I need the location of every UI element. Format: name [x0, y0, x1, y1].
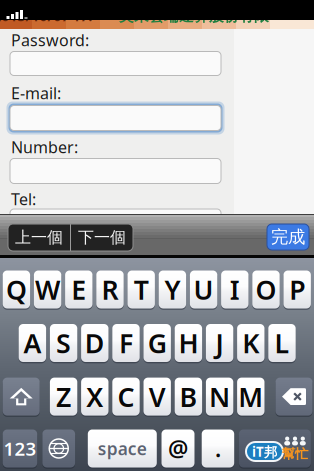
staticText: @	[168, 433, 188, 463]
button[interactable]: 上一個	[8, 224, 70, 251]
button[interactable]: R	[96, 270, 124, 308]
staticText: H	[178, 325, 198, 361]
staticText: Z	[56, 379, 71, 414]
button[interactable]: space	[88, 429, 157, 467]
button[interactable]: U	[190, 270, 217, 308]
staticText: B	[179, 379, 197, 414]
button[interactable]: N	[206, 378, 233, 416]
staticText: 完成	[271, 226, 305, 248]
button[interactable]: @	[161, 429, 194, 467]
staticText: V	[149, 379, 166, 414]
button[interactable]: C	[112, 378, 140, 416]
button[interactable]: Numbers	[3, 429, 37, 467]
staticText: Tel:	[11, 188, 36, 210]
button[interactable]: Next keyboard	[42, 429, 75, 467]
staticText: U	[194, 272, 214, 307]
staticText: G	[148, 325, 167, 361]
button[interactable]: A	[19, 324, 46, 362]
staticText: O	[255, 272, 276, 307]
button[interactable]: I	[221, 270, 248, 308]
staticText: J	[216, 325, 224, 361]
button[interactable]: G	[143, 324, 171, 362]
button[interactable]: Delete	[275, 378, 312, 416]
staticText: N	[209, 379, 230, 414]
button[interactable]: 完成	[267, 224, 309, 250]
button[interactable]: Y	[159, 270, 186, 308]
staticText: Password:	[11, 29, 89, 51]
button[interactable]: V	[143, 378, 171, 416]
button[interactable]: J	[206, 324, 233, 362]
staticText: T	[134, 272, 149, 307]
button[interactable]: D	[81, 324, 108, 362]
staticText: Number:	[11, 136, 78, 158]
staticText: 下一個	[78, 228, 126, 247]
staticText: D	[85, 325, 105, 361]
button[interactable]: K	[237, 324, 264, 362]
staticText: X	[86, 379, 103, 414]
staticText: I	[230, 272, 240, 307]
staticText: F	[119, 325, 133, 361]
staticText: S	[56, 325, 71, 361]
button[interactable]: S	[50, 324, 77, 362]
button[interactable]: M	[237, 378, 264, 416]
button[interactable]: P	[283, 270, 311, 308]
staticText: 2013/10/07 17:	[0, 7, 92, 25]
staticText: space	[98, 437, 147, 460]
staticText: K	[242, 325, 259, 361]
staticText: A	[23, 325, 41, 361]
button[interactable]: Shift	[3, 378, 40, 416]
button[interactable]: Z	[50, 378, 77, 416]
staticText: iT邦	[252, 443, 277, 460]
staticText: P	[289, 272, 305, 307]
button[interactable]: Q	[3, 270, 30, 308]
button[interactable]: Search	[239, 429, 311, 467]
staticText: E-mail:	[11, 82, 61, 104]
button[interactable]: E	[65, 270, 92, 308]
staticText: 幫忙	[282, 446, 308, 462]
button[interactable]: O	[252, 270, 280, 308]
button[interactable]: F	[112, 324, 140, 362]
button[interactable]: X	[81, 378, 108, 416]
button[interactable]: L	[268, 324, 296, 362]
button[interactable]: B	[175, 378, 202, 416]
button[interactable]: T	[127, 270, 155, 308]
staticText: E	[71, 272, 86, 307]
staticText: C	[117, 379, 134, 414]
staticText: 上一個	[15, 228, 63, 247]
staticText: Y	[164, 272, 180, 307]
staticText: .	[215, 433, 221, 463]
staticText: R	[101, 272, 118, 307]
button[interactable]: .	[202, 429, 234, 467]
button[interactable]: 下一個	[71, 224, 133, 251]
staticText: 123	[3, 436, 36, 461]
staticText: 奕果雲端運算股份有限	[119, 7, 269, 25]
staticText: M	[238, 379, 263, 414]
button[interactable]: W	[34, 270, 61, 308]
staticText: L	[274, 325, 289, 361]
button[interactable]: H	[175, 324, 202, 362]
staticText: Q	[6, 272, 27, 307]
staticText: W	[35, 272, 60, 307]
